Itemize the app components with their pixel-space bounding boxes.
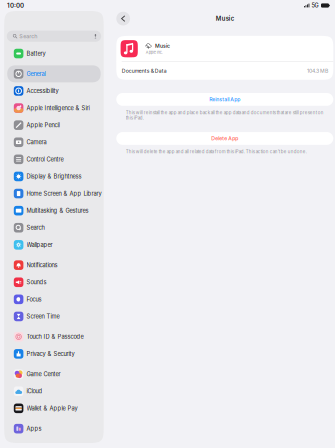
staticText: Privacy & Security (27, 350, 75, 357)
staticText: Control Centre (27, 156, 64, 163)
staticText: Music (216, 15, 234, 22)
staticText: Game Center (27, 371, 61, 378)
button[interactable]: Apple Intelligence & Siri (7, 99, 101, 117)
button[interactable]: Display & Brightness (7, 168, 101, 185)
staticText: Multitasking & Gestures (27, 207, 89, 214)
button[interactable]: Reinstall App (116, 93, 333, 106)
staticText: 104.3 MB (307, 68, 328, 74)
staticText: Camera (27, 139, 47, 146)
staticText: Focus (27, 296, 42, 303)
button[interactable]: Privacy & Security (7, 345, 101, 362)
staticText: Apple Intelligence & Siri (27, 105, 90, 111)
staticText: 5G (312, 2, 319, 9)
staticText: Documents & Data (122, 68, 167, 74)
staticText: This will delete the app and all related… (126, 149, 307, 154)
button[interactable]: Wallpaper (7, 236, 101, 253)
button[interactable]: Touch ID & Passcode (7, 328, 101, 345)
staticText: Screen Time (27, 313, 60, 320)
button[interactable]: Notifications (7, 257, 101, 274)
button[interactable]: Search (7, 219, 101, 236)
button[interactable]: Apps (7, 420, 101, 437)
button[interactable]: General (7, 65, 101, 82)
button[interactable]: Back (116, 12, 130, 25)
staticText: Apple Pencil (27, 122, 60, 129)
button[interactable]: iCloud (7, 383, 101, 400)
button[interactable]: Apple Pencil (7, 117, 101, 134)
staticText: Search (19, 33, 37, 39)
button[interactable]: Battery (7, 45, 101, 62)
staticText: iCloud (27, 388, 43, 395)
button[interactable]: Camera (7, 134, 101, 151)
button[interactable]: Home Screen & App Library (7, 185, 101, 202)
staticText: 10:00 (7, 2, 24, 9)
button[interactable]: Delete App (116, 132, 333, 145)
staticText: General (27, 70, 46, 77)
button[interactable]: Wallet & Apple Pay (7, 400, 101, 417)
staticText: Apps (27, 425, 42, 432)
staticText: Display & Brightness (27, 173, 82, 180)
staticText: Notifications (27, 262, 58, 269)
button[interactable]: Sounds (7, 274, 101, 291)
staticText: Battery (27, 50, 46, 57)
staticText: Sounds (27, 279, 47, 286)
button[interactable]: Multitasking & Gestures (7, 202, 101, 219)
staticText: Touch ID & Passcode (27, 333, 84, 340)
button[interactable]: Search (7, 31, 101, 42)
button[interactable]: Control Centre (7, 151, 101, 168)
button[interactable]: Screen Time (7, 308, 101, 325)
staticText: Wallet & Apple Pay (27, 405, 78, 412)
staticText: Home Screen & App Library (27, 190, 102, 197)
staticText: Music (155, 43, 170, 49)
staticText: Reinstall App (209, 96, 240, 102)
staticText: Search (27, 224, 45, 231)
staticText: This will reinstall the app and place ba… (126, 110, 324, 120)
staticText: Apple Inc. (146, 50, 163, 55)
button[interactable]: Accessibility (7, 82, 101, 99)
staticText: Delete App (211, 135, 238, 141)
staticText: Wallpaper (27, 241, 53, 248)
staticText: Accessibility (27, 87, 59, 94)
button[interactable]: Game Center (7, 366, 101, 383)
button[interactable]: Focus (7, 291, 101, 308)
